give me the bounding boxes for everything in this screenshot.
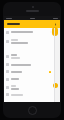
button[interactable] — [4, 68, 54, 75]
button[interactable]: Home — [28, 106, 37, 115]
button[interactable] — [4, 36, 54, 47]
button[interactable]: Expand — [4, 20, 60, 28]
other: Expand — [54, 23, 57, 26]
button[interactable] — [4, 28, 54, 36]
button[interactable] — [4, 75, 54, 83]
button[interactable] — [4, 51, 54, 61]
button[interactable]: Add — [52, 27, 58, 36]
button[interactable] — [4, 83, 54, 91]
button[interactable]: Compose — [53, 83, 58, 88]
button[interactable] — [4, 61, 54, 68]
button[interactable] — [4, 91, 54, 98]
